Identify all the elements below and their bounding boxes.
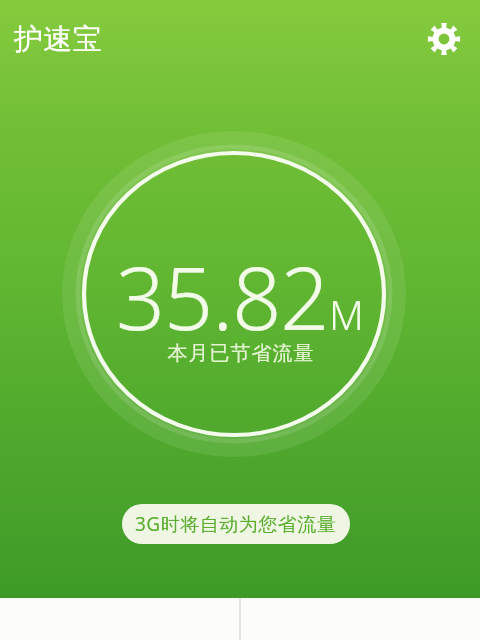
button[interactable]: Settings [416, 11, 472, 67]
button[interactable]: 3G时将自动为您省流量 [122, 504, 350, 544]
staticText: 护速宝 [14, 21, 103, 58]
staticText: 35.82 [116, 238, 329, 355]
staticText: 本月已节省流量 [167, 341, 314, 366]
staticText: 3G时将自动为您省流量 [135, 511, 337, 537]
staticText: M [329, 287, 364, 341]
